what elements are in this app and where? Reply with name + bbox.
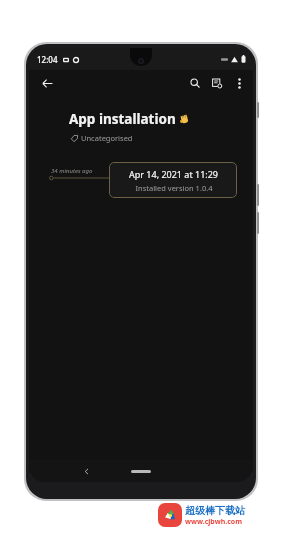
staticText: www.cjbwh.com — [185, 517, 242, 527]
staticText: App installation — [69, 110, 176, 128]
button[interactable]: Apr 14, 2021 at 11:29 — [109, 162, 237, 198]
staticText: Installed version 1.0.4 — [135, 183, 213, 193]
staticText: Uncategorised — [81, 133, 133, 143]
staticText: 超级棒下载站 — [185, 504, 245, 517]
button[interactable]: More options — [228, 72, 250, 94]
button[interactable]: Back — [35, 71, 59, 95]
staticText: 34 minutes ago — [51, 167, 93, 175]
button[interactable]: Home — [131, 470, 151, 473]
button[interactable]: Archive — [206, 72, 228, 94]
button[interactable]: Search — [184, 72, 206, 94]
button[interactable]: Back — [77, 462, 95, 480]
staticText: Apr 14, 2021 at 11:29 — [129, 168, 218, 180]
staticText: 12:04 — [37, 54, 58, 65]
